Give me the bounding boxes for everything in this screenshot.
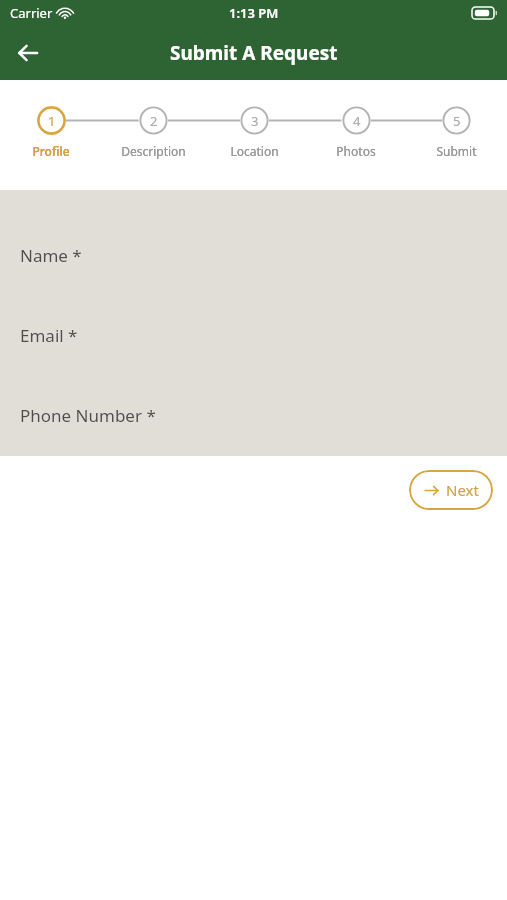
button[interactable]: 2 (102, 106, 204, 159)
staticText: Phone Number * (20, 404, 156, 426)
staticText: Photos (336, 143, 376, 159)
staticText: Name * (20, 244, 82, 266)
button[interactable]: Next (409, 470, 493, 510)
staticText: 2 (150, 112, 158, 130)
staticText: Submit (436, 143, 477, 159)
button[interactable]: 1 (0, 106, 102, 159)
staticText: 1 (48, 112, 56, 130)
button[interactable]: 5 (406, 106, 507, 159)
staticText: Profile (32, 143, 70, 159)
staticText: 3 (251, 112, 259, 130)
button[interactable]: Phone Number * (0, 404, 507, 426)
staticText: Location (230, 143, 279, 159)
staticText: Photos (336, 143, 376, 159)
staticText: 4 (353, 112, 361, 130)
staticText: Next (446, 480, 479, 500)
button[interactable]: 3 (204, 106, 305, 159)
button[interactable]: Name * (0, 244, 507, 266)
button[interactable]: Email * (0, 324, 507, 346)
staticText: 1:13 PM (229, 4, 279, 22)
staticText: Location (230, 143, 279, 159)
staticText: Profile (32, 143, 70, 159)
staticText: Email * (20, 324, 78, 346)
staticText: 5 (453, 112, 461, 130)
staticText: 4 (353, 112, 361, 130)
button[interactable]: Back (6, 31, 50, 75)
staticText: Description (121, 143, 186, 159)
staticText: 5 (453, 112, 461, 130)
staticText: 2 (150, 112, 158, 130)
button[interactable]: 4 (305, 106, 406, 159)
staticText: 3 (251, 112, 259, 130)
staticText: Carrier (10, 4, 53, 22)
staticText: Description (121, 143, 186, 159)
staticText: Submit (436, 143, 477, 159)
staticText: Submit A Request (170, 40, 338, 66)
staticText: 1 (48, 112, 56, 130)
